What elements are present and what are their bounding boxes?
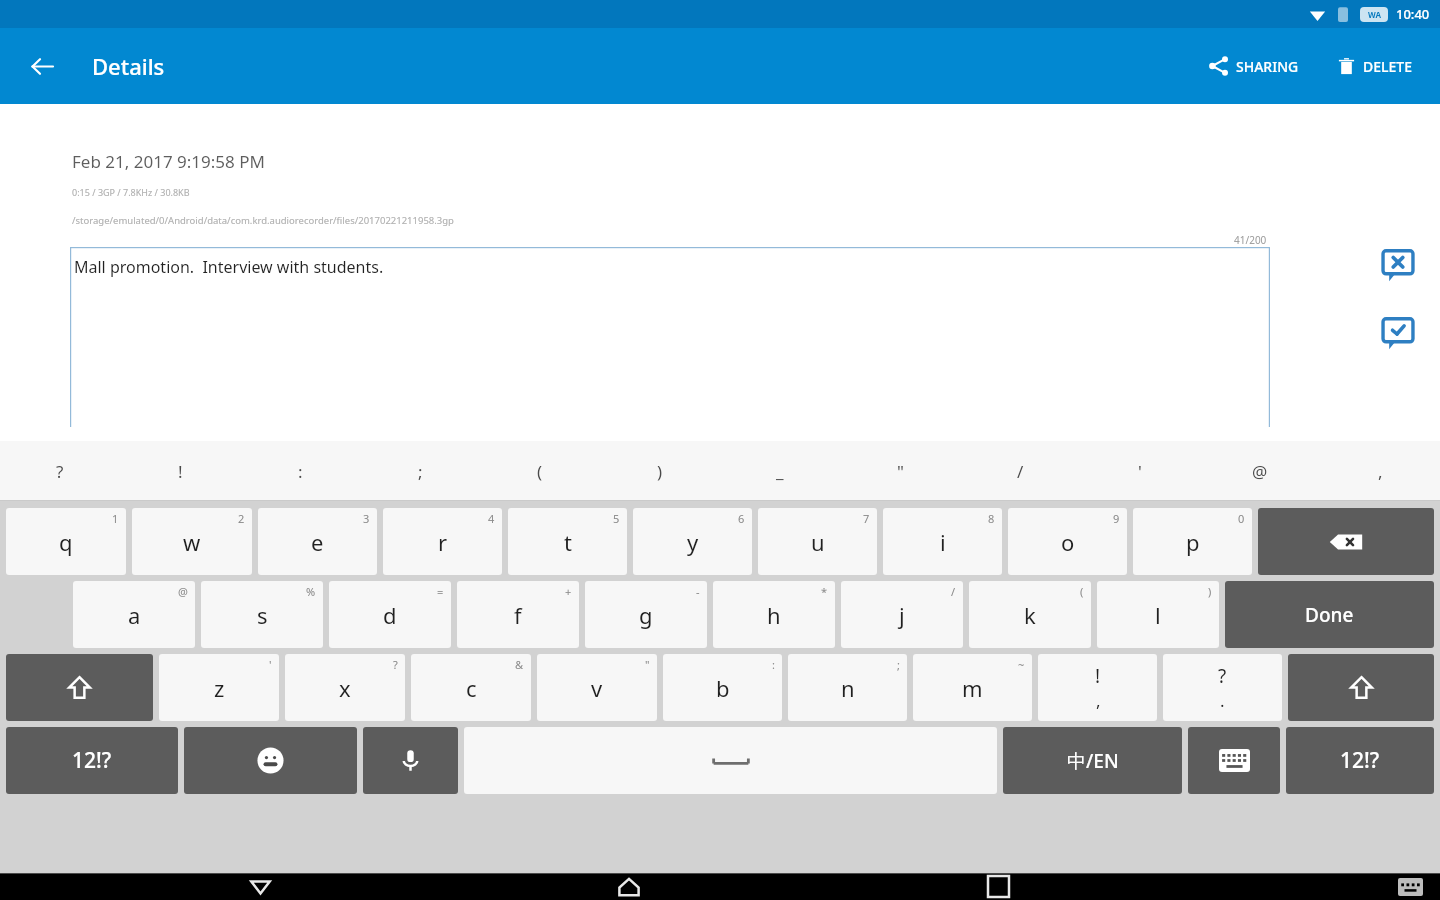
button[interactable]: 12!? — [6, 727, 178, 794]
staticText: 12!? — [72, 746, 112, 775]
staticText: f — [514, 600, 522, 630]
staticText: WA — [1368, 9, 1381, 20]
button[interactable]: u — [758, 508, 877, 575]
button[interactable]: @ — [1200, 441, 1320, 501]
staticText: x — [339, 673, 351, 703]
staticText: i — [940, 527, 946, 557]
button[interactable]: Switch input method — [1388, 873, 1432, 900]
staticText: 1 — [112, 511, 119, 526]
staticText: ; — [897, 657, 900, 672]
button[interactable]: q — [6, 508, 126, 575]
staticText: ) — [657, 460, 663, 483]
staticText: / — [951, 584, 956, 599]
button[interactable]: Hide keyboard — [234, 873, 286, 900]
button[interactable]: 中/EN — [1003, 727, 1182, 794]
button[interactable]: o — [1008, 508, 1127, 575]
button[interactable]: Space — [464, 727, 997, 794]
staticText: p — [1186, 527, 1200, 557]
button[interactable]: 12!? — [1286, 727, 1434, 794]
button[interactable]: ; — [360, 441, 480, 501]
button[interactable]: a — [73, 581, 195, 648]
button[interactable]: Shift — [1288, 654, 1434, 721]
button[interactable]: ( — [480, 441, 600, 501]
button[interactable]: j — [841, 581, 963, 648]
button[interactable]: t — [508, 508, 627, 575]
button[interactable]: _ — [720, 441, 840, 501]
staticText: @ — [1252, 460, 1268, 483]
staticText: ! — [1095, 663, 1101, 689]
button[interactable]: y — [633, 508, 752, 575]
button[interactable]: p — [1133, 508, 1252, 575]
staticText: 0 — [1238, 511, 1245, 526]
staticText: 9 — [1113, 511, 1120, 526]
staticText: a — [128, 600, 141, 630]
button[interactable]: Done — [1225, 581, 1434, 648]
staticText: g — [639, 600, 653, 630]
button[interactable]: : — [240, 441, 360, 501]
button[interactable]: ! — [1038, 654, 1157, 721]
button[interactable]: ' — [1080, 441, 1200, 501]
button[interactable]: b — [663, 654, 782, 721]
staticText: 中/EN — [1067, 748, 1119, 774]
button[interactable]: SHARING — [1201, 44, 1307, 88]
staticText: 7 — [863, 511, 870, 526]
button[interactable]: ! — [120, 441, 240, 501]
button[interactable]: m — [913, 654, 1032, 721]
button[interactable]: n — [788, 654, 907, 721]
button[interactable]: Recents — [972, 873, 1024, 900]
button[interactable]: k — [969, 581, 1091, 648]
button[interactable]: v — [537, 654, 657, 721]
button[interactable]: Back — [18, 42, 66, 90]
button[interactable]: s — [201, 581, 323, 648]
staticText: h — [767, 600, 781, 630]
button[interactable]: x — [285, 654, 405, 721]
staticText: 12!? — [1340, 746, 1380, 775]
staticText: - — [696, 584, 700, 599]
button[interactable]: Mall promotion. Interview with students. — [70, 247, 1270, 427]
staticText: @ — [178, 584, 188, 599]
staticText: + — [565, 584, 572, 599]
button[interactable]: w — [132, 508, 252, 575]
button[interactable]: f — [457, 581, 579, 648]
staticText: 2 — [238, 511, 245, 526]
button[interactable]: Switch keyboard — [1188, 727, 1280, 794]
button[interactable]: Voice input — [363, 727, 458, 794]
button[interactable]: Shift — [6, 654, 153, 721]
staticText: Feb 21, 2017 9:19:58 PM — [72, 150, 265, 173]
button[interactable]: h — [713, 581, 835, 648]
staticText: ( — [1080, 584, 1084, 599]
button[interactable]: Confirm — [1377, 313, 1419, 355]
button[interactable]: z — [159, 654, 279, 721]
staticText: Details — [92, 51, 165, 81]
button[interactable]: Home — [603, 873, 655, 900]
button[interactable]: Cancel — [1377, 245, 1419, 287]
staticText: e — [311, 527, 324, 557]
button[interactable]: ? — [1163, 654, 1282, 721]
button[interactable]: Backspace — [1258, 508, 1434, 575]
button[interactable]: DELETE — [1329, 45, 1420, 88]
button[interactable]: c — [411, 654, 531, 721]
button[interactable]: ) — [600, 441, 720, 501]
button[interactable]: r — [383, 508, 502, 575]
button[interactable]: l — [1097, 581, 1219, 648]
staticText: 41/200 — [1234, 233, 1267, 247]
staticText: ? — [393, 657, 398, 672]
button[interactable]: Emoji — [184, 727, 357, 794]
staticText: 3 — [363, 511, 370, 526]
button[interactable]: e — [258, 508, 377, 575]
staticText: 8 — [988, 511, 995, 526]
staticText: 5 — [613, 511, 620, 526]
staticText: " — [645, 657, 650, 672]
button[interactable]: " — [840, 441, 960, 501]
button[interactable]: / — [960, 441, 1080, 501]
button[interactable]: d — [329, 581, 451, 648]
staticText: ) — [1208, 584, 1212, 599]
button[interactable]: i — [883, 508, 1002, 575]
staticText: ' — [269, 657, 272, 672]
button[interactable]: g — [585, 581, 707, 648]
button[interactable]: , — [1320, 441, 1440, 501]
staticText: . — [1220, 689, 1225, 712]
staticText: ? — [56, 460, 64, 483]
button[interactable]: ? — [0, 441, 120, 501]
staticText: r — [438, 527, 448, 557]
